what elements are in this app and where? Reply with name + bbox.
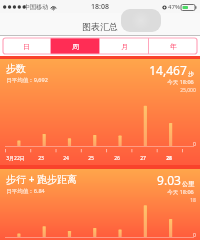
button[interactable]: 月: [100, 38, 148, 54]
staticText: 0: [193, 141, 196, 148]
staticText: 日: [23, 42, 30, 51]
button[interactable]: 日: [3, 38, 50, 54]
button[interactable]: 周: [51, 38, 99, 54]
staticText: 18: [190, 197, 196, 204]
staticText: 今天 18:06: [167, 188, 194, 196]
staticText: 图表汇总: [82, 21, 118, 32]
staticText: 47%: [168, 3, 180, 11]
staticText: 周: [72, 42, 79, 51]
staticText: 步数: [6, 62, 26, 75]
staticText: 今天 18:06: [167, 78, 194, 86]
button[interactable]: 步数: [0, 59, 200, 165]
staticText: 18:08: [91, 2, 109, 12]
staticText: 24: [63, 155, 69, 162]
staticText: 3月22日: [6, 155, 25, 162]
staticText: 日平均值：6.84: [6, 187, 45, 195]
staticText: 23: [38, 155, 44, 162]
staticText: 9.03: [157, 172, 181, 188]
staticText: 0: [193, 232, 196, 239]
staticText: 14,467: [149, 62, 187, 78]
staticText: 27: [140, 155, 146, 162]
staticText: 步行 + 跑步距离: [6, 172, 77, 186]
staticText: 28: [166, 155, 172, 162]
staticText: 年: [170, 42, 177, 51]
staticText: 中国移动: [24, 3, 48, 11]
staticText: 公里: [182, 180, 194, 188]
button[interactable]: 年: [149, 38, 197, 54]
staticText: 26: [114, 155, 120, 162]
staticText: 25: [88, 155, 94, 162]
staticText: 日平均值：9,692: [6, 76, 48, 84]
staticText: 步: [188, 70, 194, 78]
button[interactable]: 步行 + 跑步距离: [0, 169, 200, 240]
staticText: 25,000: [180, 87, 196, 94]
staticText: 月: [121, 42, 128, 51]
